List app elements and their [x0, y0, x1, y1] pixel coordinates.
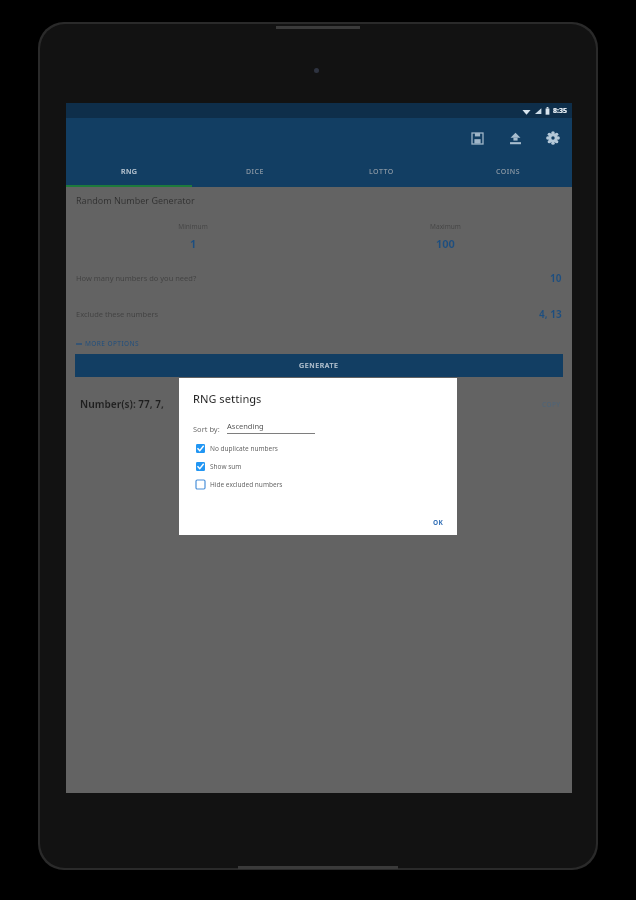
- staticText: How many numbers do you need?: [76, 273, 197, 283]
- staticText: MORE OPTIONS: [85, 339, 140, 348]
- staticText: Sort by:: [193, 424, 220, 434]
- staticText: Show sum: [210, 462, 242, 471]
- button[interactable]: Show sum: [193, 457, 445, 475]
- staticText: Minimum: [178, 222, 208, 231]
- button[interactable]: Sort by:: [193, 421, 315, 434]
- button[interactable]: RNG: [66, 158, 192, 185]
- staticText: COPY: [542, 400, 561, 409]
- button[interactable]: Maximum: [430, 222, 461, 251]
- staticText: No duplicate numbers: [210, 444, 278, 453]
- staticText: OK: [433, 518, 444, 527]
- button[interactable]: Exclude these numbers: [66, 296, 572, 332]
- button[interactable]: Minimum: [178, 222, 208, 251]
- button[interactable]: GENERATE: [75, 354, 563, 377]
- staticText: DICE: [246, 167, 264, 177]
- button[interactable]: COINS: [445, 158, 572, 185]
- button[interactable]: LOTTO: [318, 158, 445, 185]
- staticText: GENERATE: [299, 361, 339, 371]
- staticText: Hide excluded numbers: [210, 480, 283, 489]
- staticText: Number(s): 77, 7,: [80, 397, 164, 411]
- staticText: COINS: [496, 167, 521, 177]
- button[interactable]: Hide excluded numbers: [193, 475, 445, 493]
- staticText: LOTTO: [369, 167, 394, 177]
- button[interactable]: COPY: [539, 397, 564, 412]
- staticText: RNG: [121, 167, 138, 177]
- staticText: 8:35: [553, 106, 567, 116]
- staticText: Ascending: [227, 421, 264, 431]
- staticText: Maximum: [430, 222, 461, 231]
- staticText: 4, 13: [539, 307, 562, 321]
- button[interactable]: Upload: [504, 127, 526, 149]
- staticText: Random Number Generator: [76, 194, 195, 206]
- staticText: 10: [550, 271, 562, 285]
- button[interactable]: MORE OPTIONS: [66, 332, 572, 354]
- staticText: Exclude these numbers: [76, 309, 159, 319]
- button[interactable]: No duplicate numbers: [193, 439, 445, 457]
- staticText: 1: [190, 236, 197, 251]
- button[interactable]: How many numbers do you need?: [66, 260, 572, 296]
- button[interactable]: DICE: [192, 158, 318, 185]
- button[interactable]: Save: [466, 127, 488, 149]
- staticText: RNG settings: [193, 391, 262, 406]
- button[interactable]: OK: [428, 515, 449, 530]
- button[interactable]: Settings: [542, 127, 564, 149]
- staticText: 100: [436, 236, 455, 251]
